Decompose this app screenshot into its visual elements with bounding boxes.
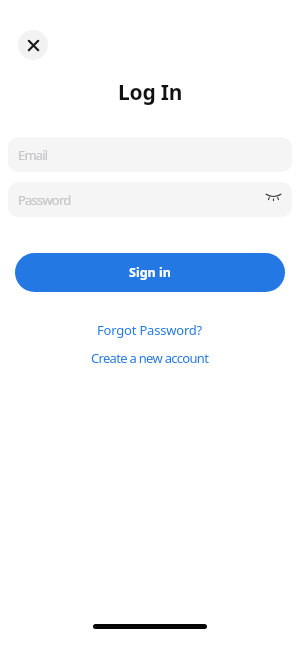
- button[interactable]: Email: [8, 137, 292, 172]
- staticText: Password: [18, 191, 71, 209]
- button[interactable]: [18, 30, 48, 60]
- staticText: Email: [18, 146, 48, 164]
- button[interactable]: Password: [8, 182, 292, 217]
- staticText: Forgot Password?: [97, 321, 203, 339]
- staticText: Log In: [118, 78, 183, 107]
- button[interactable]: Create a new account: [91, 349, 209, 367]
- staticText: Sign in: [129, 264, 171, 281]
- button[interactable]: Sign in: [15, 253, 285, 292]
- staticText: Create a new account: [91, 349, 209, 367]
- button[interactable]: Forgot Password?: [97, 321, 203, 339]
